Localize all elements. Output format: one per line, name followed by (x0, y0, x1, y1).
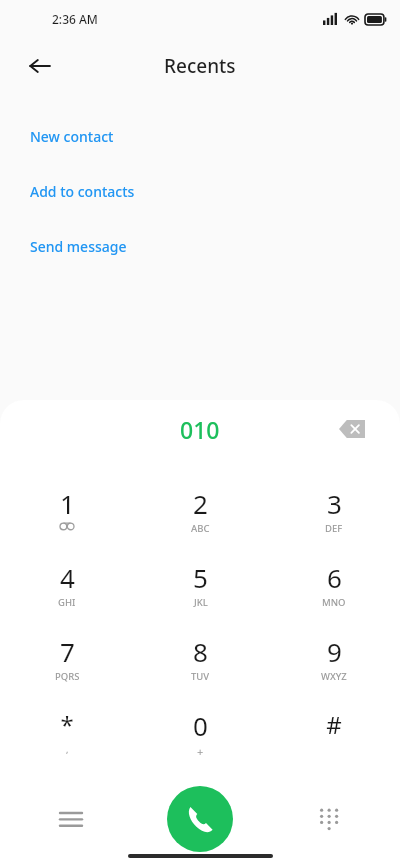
staticText: PQRS (55, 670, 80, 683)
button[interactable]: Backspace (332, 409, 372, 449)
button[interactable]: 1 (0, 486, 134, 536)
button[interactable]: 7 (0, 634, 134, 684)
staticText: New contact (30, 127, 114, 146)
staticText: WXYZ (321, 670, 347, 683)
staticText: 1 (60, 486, 75, 521)
button[interactable]: 4 (0, 560, 134, 610)
button[interactable]: 6 (267, 560, 400, 610)
button[interactable]: Menu (50, 798, 92, 840)
staticText: + (197, 744, 204, 758)
button[interactable]: * (0, 708, 134, 758)
button[interactable]: 5 (134, 560, 267, 610)
button[interactable]: 3 (267, 486, 400, 536)
staticText: Recents (164, 53, 236, 79)
staticText: 4 (60, 560, 75, 595)
button[interactable]: 0 (134, 708, 267, 758)
staticText: * (60, 708, 74, 741)
button[interactable]: 2 (134, 486, 267, 536)
staticText: JKL (194, 596, 208, 609)
staticText: 6 (327, 560, 342, 595)
button[interactable]: Back (20, 46, 60, 86)
staticText: DEF (325, 522, 343, 535)
staticText: 010 (180, 414, 220, 445)
staticText: 2:36 AM (52, 11, 98, 27)
button[interactable]: # (267, 708, 400, 758)
staticText: GHI (58, 596, 76, 609)
staticText: Send message (30, 237, 127, 256)
staticText: # (326, 708, 342, 741)
staticText: MNO (322, 596, 346, 609)
staticText: 2 (193, 486, 208, 521)
button[interactable]: Add to contacts (0, 179, 400, 203)
staticText: 8 (193, 634, 208, 669)
staticText: ABC (191, 522, 210, 535)
button[interactable]: Call (167, 786, 233, 852)
staticText: 5 (193, 560, 208, 595)
staticText: , (66, 743, 69, 755)
button[interactable]: New contact (0, 124, 400, 148)
button[interactable]: Dialpad (308, 798, 350, 840)
staticText: Add to contacts (30, 182, 135, 201)
staticText: 3 (327, 486, 342, 521)
staticText: 7 (60, 634, 75, 669)
button[interactable]: Send message (0, 234, 400, 258)
button[interactable]: 9 (267, 634, 400, 684)
staticText: TUV (191, 670, 210, 683)
button[interactable]: 8 (134, 634, 267, 684)
staticText: 0 (193, 708, 208, 743)
staticText: 9 (327, 634, 342, 669)
